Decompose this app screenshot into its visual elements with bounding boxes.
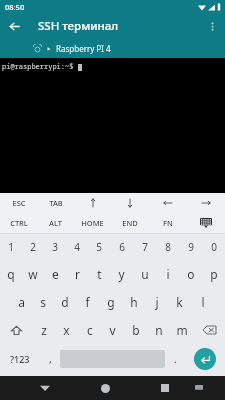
button[interactable]: 7	[133, 234, 156, 260]
staticText: ESC	[12, 198, 26, 208]
staticText: w	[28, 266, 38, 282]
button[interactable]: a	[10, 288, 32, 316]
staticText: m	[176, 322, 188, 338]
button[interactable]: 6	[110, 234, 133, 260]
button[interactable]: g	[99, 288, 122, 316]
staticText: x	[63, 322, 70, 338]
staticText: END	[122, 218, 138, 228]
button[interactable]: Hide keyboard	[187, 213, 225, 233]
staticText: 9	[188, 240, 194, 254]
staticText: pi@raspberrypi:~$	[2, 62, 78, 72]
button[interactable]: Enter	[194, 348, 216, 370]
staticText: j	[155, 294, 159, 310]
staticText: t	[97, 266, 102, 282]
button[interactable]: Arrow right	[187, 193, 225, 213]
staticText: .	[174, 352, 177, 366]
button[interactable]: u	[133, 260, 156, 288]
button[interactable]: CTRL	[0, 213, 37, 233]
staticText: ,	[49, 352, 52, 366]
button[interactable]: y	[110, 260, 133, 288]
button[interactable]: w	[22, 260, 44, 288]
staticText: q	[7, 266, 15, 282]
staticText: h	[130, 294, 138, 310]
staticText: SSH терминал	[38, 18, 119, 34]
button[interactable]: 9	[179, 234, 202, 260]
button[interactable]: l	[191, 288, 214, 316]
button[interactable]: Back	[3, 15, 25, 37]
button[interactable]: Home	[88, 376, 122, 400]
button[interactable]: z	[32, 316, 55, 344]
staticText: CTRL	[10, 218, 28, 228]
button[interactable]: ,	[40, 344, 60, 374]
staticText: b	[132, 322, 140, 338]
button[interactable]: t	[88, 260, 110, 288]
button[interactable]: e	[44, 260, 66, 288]
button[interactable]: n	[147, 316, 170, 344]
staticText: 2	[30, 240, 36, 254]
button[interactable]: More options	[201, 15, 223, 37]
button[interactable]: o	[179, 260, 202, 288]
button[interactable]: 0	[202, 234, 225, 260]
staticText: Raspberry PI 4	[56, 43, 111, 54]
button[interactable]: TAB	[37, 193, 74, 213]
button[interactable]: ALT	[37, 213, 74, 233]
button[interactable]: Hide keyboard	[28, 376, 62, 400]
button[interactable]: q	[0, 260, 22, 288]
button[interactable]: h	[122, 288, 145, 316]
button[interactable]: Arrow down	[111, 193, 149, 213]
staticText: u	[141, 266, 149, 282]
button[interactable]: Recent apps	[148, 376, 182, 400]
button[interactable]: c	[78, 316, 101, 344]
staticText: e	[52, 266, 59, 282]
staticText: ?123	[10, 353, 30, 365]
staticText: 3	[52, 240, 58, 254]
button[interactable]: 4	[66, 234, 88, 260]
button[interactable]: d	[54, 288, 76, 316]
staticText: FN	[163, 218, 173, 228]
button[interactable]: b	[124, 316, 147, 344]
button[interactable]: HOME	[74, 213, 111, 233]
button[interactable]: m	[170, 316, 193, 344]
button[interactable]: Shift	[0, 316, 32, 344]
button[interactable]: Arrow left	[149, 193, 187, 213]
staticText: g	[107, 294, 115, 310]
button[interactable]: v	[101, 316, 124, 344]
button[interactable]: r	[66, 260, 88, 288]
staticText: i	[166, 266, 170, 282]
button[interactable]: j	[145, 288, 168, 316]
button[interactable]: x	[55, 316, 78, 344]
staticText: 7	[142, 240, 148, 254]
button[interactable]: ?123	[0, 344, 40, 374]
button[interactable]: pi@raspberrypi:~$	[0, 58, 225, 193]
button[interactable]: 1	[0, 234, 22, 260]
staticText: o	[187, 266, 195, 282]
staticText: n	[155, 322, 163, 338]
button[interactable]: p	[202, 260, 225, 288]
button[interactable]: END	[111, 213, 149, 233]
staticText: c	[87, 322, 93, 338]
staticText: d	[61, 294, 69, 310]
button[interactable]: f	[76, 288, 99, 316]
button[interactable]: ESC	[0, 193, 37, 213]
button[interactable]: 3	[44, 234, 66, 260]
staticText: TAB	[49, 198, 63, 208]
staticText: 6	[119, 240, 125, 254]
staticText: HOME	[81, 218, 104, 228]
button[interactable]: .	[165, 344, 185, 374]
button[interactable]: 5	[88, 234, 110, 260]
staticText: p	[210, 266, 218, 282]
button[interactable]: i	[156, 260, 179, 288]
button[interactable]: Raspberry PI 4	[0, 38, 225, 58]
staticText: 0	[211, 240, 217, 254]
button[interactable]: 8	[156, 234, 179, 260]
staticText: 8	[165, 240, 171, 254]
button[interactable]: Switch keyboard	[182, 376, 216, 400]
button[interactable]: k	[168, 288, 191, 316]
button[interactable]: 2	[22, 234, 44, 260]
button[interactable]: FN	[149, 213, 187, 233]
button[interactable]: Backspace	[193, 316, 225, 344]
button[interactable]: Arrow up	[74, 193, 111, 213]
button[interactable]: s	[32, 288, 54, 316]
staticText: v	[109, 322, 116, 338]
